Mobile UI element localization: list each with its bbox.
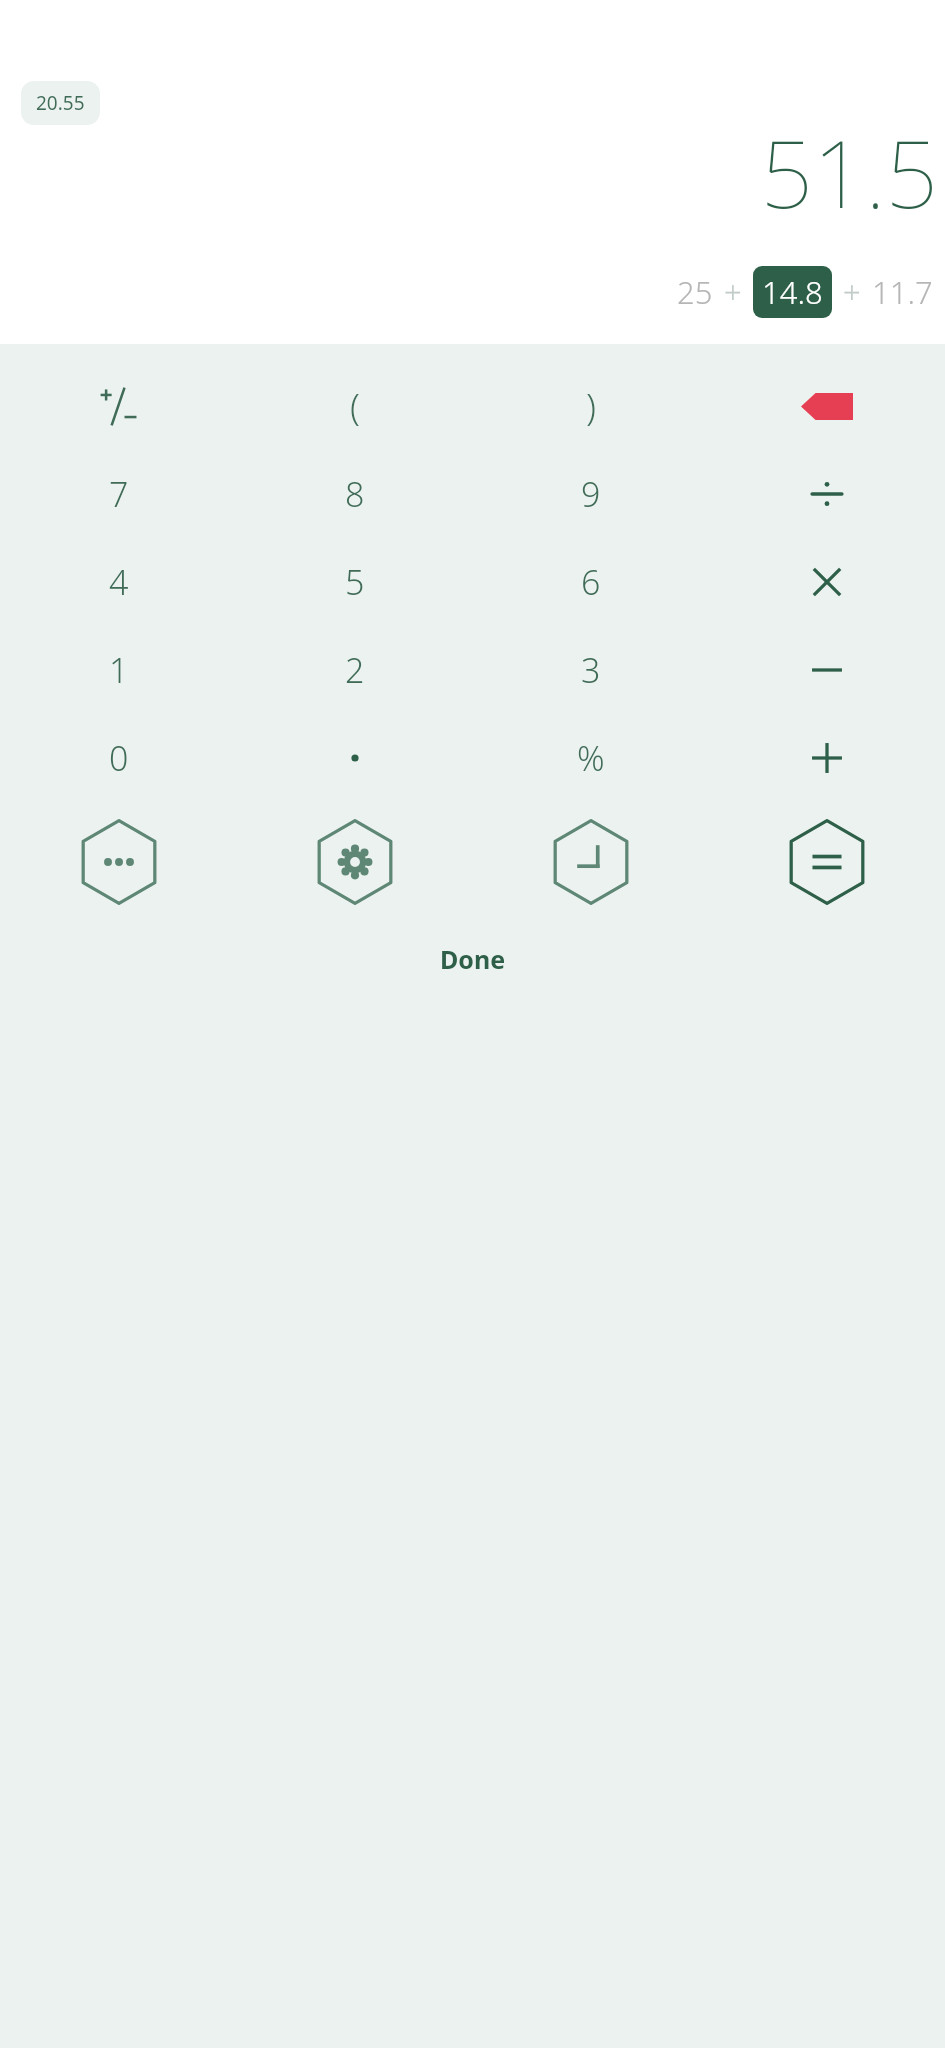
button[interactable]: Decimal point xyxy=(237,714,473,802)
staticText: 6 xyxy=(581,559,601,605)
staticText: 1 xyxy=(109,647,129,693)
staticText: + xyxy=(843,271,861,313)
button[interactable]: 5 xyxy=(237,538,473,626)
staticText: 5 xyxy=(345,559,365,605)
staticText: ( xyxy=(350,382,360,431)
button[interactable]: Settings xyxy=(237,802,473,922)
button[interactable]: 9 xyxy=(473,450,709,538)
button[interactable]: ) xyxy=(473,362,709,450)
staticText: % xyxy=(577,735,605,781)
button[interactable]: More options xyxy=(0,802,237,922)
button[interactable]: 1 xyxy=(0,626,237,714)
button[interactable]: History xyxy=(473,802,709,922)
staticText: ) xyxy=(586,382,596,431)
button[interactable]: Multiply xyxy=(709,538,945,626)
staticText: 2 xyxy=(345,647,365,693)
staticText: 25 xyxy=(677,271,713,313)
staticText: 14.8 xyxy=(762,271,823,313)
button[interactable]: 20.55 xyxy=(21,81,100,125)
button[interactable]: 6 xyxy=(473,538,709,626)
button[interactable]: 0 xyxy=(0,714,237,802)
staticText: 51.5 xyxy=(760,110,938,235)
button[interactable]: Divide xyxy=(709,450,945,538)
staticText: 4 xyxy=(109,559,129,605)
staticText: 8 xyxy=(345,471,365,517)
button[interactable]: 8 xyxy=(237,450,473,538)
staticText: 20.55 xyxy=(36,90,85,116)
button[interactable]: 7 xyxy=(0,450,237,538)
button[interactable]: Plus minus sign xyxy=(0,362,237,450)
staticText: 11.7 xyxy=(872,271,933,313)
button[interactable]: Subtract xyxy=(709,626,945,714)
staticText: 7 xyxy=(109,471,129,517)
button[interactable]: % xyxy=(473,714,709,802)
button[interactable]: Backspace xyxy=(709,362,945,450)
button[interactable]: 14.8 xyxy=(753,266,832,318)
button[interactable]: 2 xyxy=(237,626,473,714)
staticText: + xyxy=(724,271,742,313)
button[interactable]: Equals xyxy=(709,802,945,922)
staticText: Done xyxy=(440,942,506,976)
button[interactable]: Add xyxy=(709,714,945,802)
button[interactable]: 4 xyxy=(0,538,237,626)
staticText: 9 xyxy=(581,471,601,517)
button[interactable]: 3 xyxy=(473,626,709,714)
button[interactable]: ( xyxy=(237,362,473,450)
staticText: 0 xyxy=(109,735,129,781)
button[interactable]: Done xyxy=(410,934,536,984)
staticText: 3 xyxy=(581,647,601,693)
